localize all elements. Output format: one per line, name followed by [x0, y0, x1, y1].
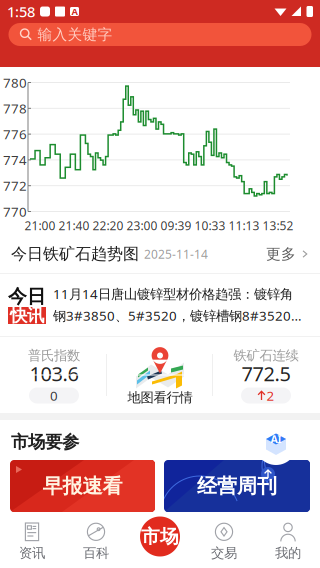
staticText: 百科	[83, 545, 109, 561]
staticText: 钢3#3850、5#3520，镀锌槽钢8#3520…	[53, 307, 302, 324]
button[interactable]: 今日铁矿石趋势图	[0, 235, 320, 273]
button[interactable]: 资讯	[0, 515, 64, 567]
staticText: 11月14日唐山镀锌型材价格趋强：镀锌角	[53, 285, 293, 303]
button[interactable]: 早报速看	[10, 460, 155, 512]
staticText: 103.6	[29, 360, 78, 387]
staticText: 23:00	[126, 217, 157, 233]
button[interactable]: 输入关键字	[8, 23, 311, 46]
staticText: 铁矿石连续	[233, 347, 298, 364]
button[interactable]: 今日	[0, 274, 320, 336]
staticText: 772	[3, 177, 27, 194]
staticText: 22:20	[92, 217, 123, 233]
staticText: 10:33	[194, 217, 225, 233]
button[interactable]: 经营周刊	[164, 460, 310, 512]
staticText: 我的	[275, 545, 301, 561]
staticText: 普氏指数	[28, 347, 80, 364]
staticText: 更多	[266, 245, 296, 263]
button[interactable]: 普氏指数	[1, 336, 107, 413]
staticText: 资讯	[19, 545, 45, 561]
staticText: 21:00	[24, 217, 55, 233]
staticText: 经营周刊	[197, 474, 277, 498]
staticText: 780	[3, 74, 27, 91]
staticText: 早报速看	[42, 474, 122, 498]
staticText: AI	[270, 432, 281, 446]
staticText: 交易	[211, 545, 237, 561]
staticText: 0	[50, 387, 58, 404]
staticText: 778	[3, 99, 27, 117]
staticText: 09:39	[160, 217, 191, 233]
button[interactable]: 铁矿石连续	[213, 336, 319, 413]
staticText: 774	[3, 151, 27, 169]
staticText: 770	[3, 203, 27, 220]
button[interactable]: 交易	[192, 515, 256, 567]
staticText: 776	[3, 125, 27, 143]
button[interactable]: 地图看行情	[107, 336, 213, 413]
staticText: 输入关键字	[37, 25, 112, 43]
staticText: 今日铁矿石趋势图	[11, 244, 139, 264]
staticText: 11:13	[228, 217, 259, 233]
staticText: 地图看行情	[127, 389, 192, 406]
staticText: 21:40	[58, 217, 89, 233]
staticText: 2	[266, 387, 274, 404]
staticText: 1:58	[7, 2, 35, 21]
staticText: 市场要参	[11, 431, 79, 453]
button[interactable]: 市场	[138, 514, 182, 558]
staticText: 772.5	[241, 360, 290, 387]
staticText: A	[71, 5, 77, 18]
staticText: 快讯	[10, 305, 44, 326]
button[interactable]: AI 助手	[254, 422, 298, 466]
staticText: 市场	[141, 525, 179, 548]
staticText: 13:52	[262, 217, 293, 233]
staticText: 今日	[8, 285, 46, 308]
button[interactable]: 我的	[256, 515, 320, 567]
staticText: 2025-11-14	[144, 246, 208, 262]
button[interactable]: 百科	[64, 515, 128, 567]
